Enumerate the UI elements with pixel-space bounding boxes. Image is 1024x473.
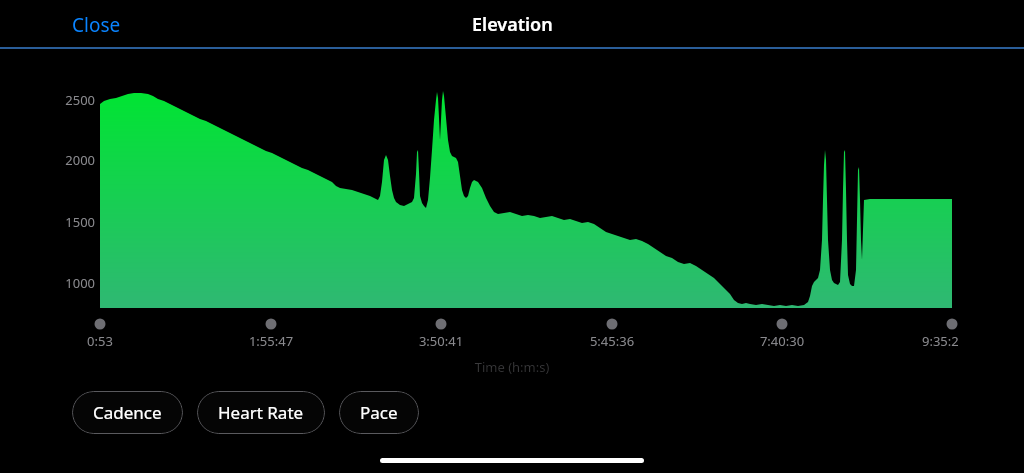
staticText: 2000	[40, 151, 95, 169]
button[interactable]: Close	[56, 6, 137, 44]
staticText: 5:45:36	[566, 332, 658, 350]
staticText: 3:50:41	[395, 332, 487, 350]
button[interactable]: Cadence	[72, 391, 183, 434]
staticText: Heart Rate	[218, 401, 304, 424]
button[interactable]: Heart Rate	[197, 391, 325, 434]
other: Home indicator	[380, 458, 644, 463]
button[interactable]: Pace	[339, 391, 419, 434]
staticText: 9:35:2	[922, 332, 1014, 350]
staticText: 0:53	[54, 332, 146, 350]
staticText: Close	[72, 12, 121, 38]
staticText: Time (h:m:s)	[0, 358, 1024, 376]
staticText: Elevation	[472, 12, 553, 37]
staticText: 1:55:47	[225, 332, 317, 350]
staticText: 2500	[40, 91, 95, 109]
staticText: 1000	[40, 274, 95, 292]
staticText: 7:40:30	[736, 332, 828, 350]
staticText: Cadence	[93, 401, 162, 424]
staticText: 1500	[40, 213, 95, 231]
staticText: Pace	[360, 401, 398, 424]
